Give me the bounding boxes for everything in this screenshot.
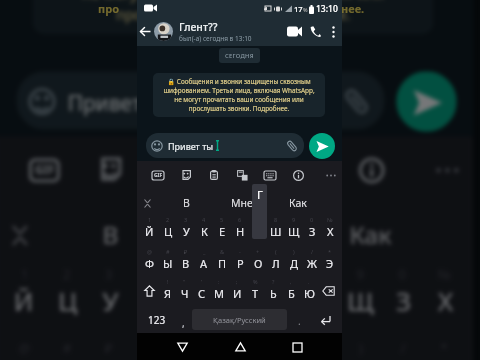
button[interactable]: Translate — [207, 136, 273, 202]
button[interactable]: Backspace — [318, 276, 339, 306]
button[interactable]: 1 — [2, 258, 47, 332]
button[interactable]: Translate — [228, 161, 256, 189]
button[interactable]: Send — [309, 133, 335, 159]
button[interactable]: № — [321, 213, 339, 245]
button[interactable]: GIF — [12, 136, 77, 202]
button[interactable]: Clipboard — [142, 136, 207, 202]
button[interactable]: Attach — [284, 138, 299, 153]
button[interactable]: Expand — [0, 211, 44, 258]
button[interactable]: Info — [284, 161, 312, 189]
button[interactable]: Привет ты — [146, 133, 304, 158]
button[interactable]: 8 — [298, 258, 340, 332]
button[interactable]: Clipboard — [200, 161, 228, 189]
button[interactable]: В — [158, 193, 214, 213]
button[interactable]: 🔒 Сообщения и звонки защищены сквозным ш… — [153, 73, 325, 117]
button[interactable]: СЕГОДНЯ — [219, 48, 260, 63]
button[interactable]: 5 — [213, 213, 231, 245]
button[interactable]: 4 — [131, 258, 172, 332]
button[interactable]: Keyboard — [256, 161, 284, 189]
button[interactable]: & — [172, 332, 214, 360]
button[interactable]: + — [256, 332, 298, 360]
button[interactable]: Қазақ/Русский — [192, 309, 287, 330]
button[interactable]: 9 — [340, 258, 382, 332]
button[interactable]: * — [321, 245, 339, 276]
button[interactable]: More options — [325, 17, 342, 46]
button[interactable]: Keyboard — [273, 136, 338, 202]
button[interactable]: Enter — [311, 306, 339, 333]
staticText: 3 — [184, 216, 188, 223]
button[interactable]: 🔒 Сообщения и звонки защищены сквозным ш… — [33, 0, 433, 34]
button[interactable]: ) — [340, 332, 382, 360]
button[interactable]: 2 — [47, 258, 89, 332]
button[interactable]: ’ — [193, 276, 210, 306]
button[interactable]: 5 — [172, 258, 214, 332]
staticText: Х — [327, 224, 334, 239]
button[interactable]: Recents — [285, 335, 309, 359]
button[interactable]: ₽ — [177, 245, 195, 276]
button[interactable]: , — [174, 306, 192, 333]
button[interactable]: - — [231, 245, 249, 276]
button[interactable]: : — [210, 276, 228, 306]
button[interactable]: Back — [137, 17, 154, 46]
button[interactable]: GIF — [144, 161, 172, 189]
button[interactable]: 0 — [303, 213, 321, 245]
button[interactable]: % — [246, 276, 264, 306]
button[interactable]: Home — [228, 335, 252, 359]
button[interactable]: 3 — [177, 213, 195, 245]
button[interactable]: Expand — [137, 193, 158, 213]
button[interactable]: 2 — [159, 213, 177, 245]
button[interactable]: & — [213, 245, 231, 276]
button[interactable]: . — [300, 276, 318, 306]
button[interactable]: ! — [159, 276, 176, 306]
button[interactable]: Мне — [175, 211, 305, 258]
button[interactable]: 3 — [89, 258, 130, 332]
button[interactable]: - — [214, 332, 256, 360]
button[interactable]: Как — [270, 193, 326, 213]
button[interactable]: Stickers — [77, 136, 142, 202]
button[interactable]: Как — [305, 211, 436, 258]
button[interactable]: Attach — [338, 83, 373, 118]
button[interactable]: . — [287, 306, 311, 333]
button[interactable]: 1 — [140, 213, 159, 245]
button[interactable]: Back — [170, 335, 194, 359]
button[interactable]: Voice call — [305, 17, 325, 46]
button[interactable]: Stickers — [172, 161, 200, 189]
button[interactable]: В — [44, 211, 175, 258]
button[interactable]: ( — [267, 245, 285, 276]
button[interactable]: 7 — [256, 258, 298, 332]
button[interactable]: № — [424, 258, 466, 332]
button[interactable]: Shift — [140, 276, 159, 306]
button[interactable]: Привет ты — [16, 71, 384, 130]
button[interactable]: " — [176, 276, 193, 306]
button[interactable]: ; — [228, 276, 246, 306]
button[interactable]: 7 — [249, 213, 267, 245]
button[interactable]: + — [249, 245, 267, 276]
button[interactable]: 0 — [382, 258, 424, 332]
button[interactable]: , — [282, 276, 300, 306]
button[interactable]: 6 — [231, 213, 249, 245]
button[interactable]: 6 — [214, 258, 256, 332]
button[interactable]: Мне — [214, 193, 270, 213]
button[interactable]: _ — [195, 245, 213, 276]
button[interactable]: Send — [396, 71, 457, 132]
button[interactable]: Video call — [283, 17, 305, 46]
button[interactable]: _ — [131, 332, 172, 360]
button[interactable]: ( — [298, 332, 340, 360]
button[interactable]: / — [303, 245, 321, 276]
button[interactable]: 8 — [267, 213, 285, 245]
button[interactable]: More — [319, 161, 342, 189]
button[interactable]: 123 — [140, 306, 174, 333]
button[interactable]: @ — [140, 245, 159, 276]
button[interactable]: # — [159, 245, 177, 276]
button[interactable]: 9 — [285, 213, 303, 245]
button[interactable]: ? — [264, 276, 282, 306]
button[interactable]: 4 — [195, 213, 213, 245]
button[interactable]: Info — [338, 136, 403, 202]
button[interactable]: ) — [285, 245, 303, 276]
